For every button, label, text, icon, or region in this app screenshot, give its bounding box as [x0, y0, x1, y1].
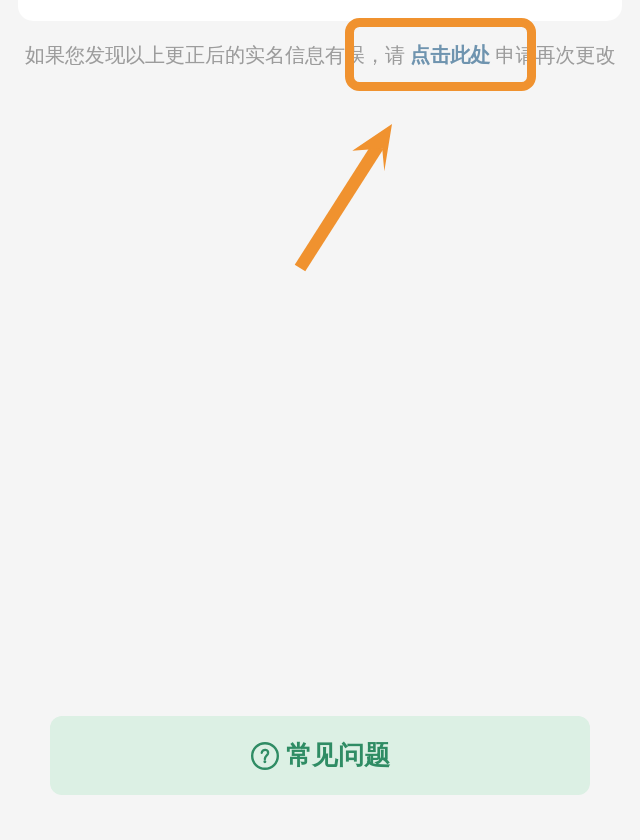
- staticText: 常见问题: [286, 739, 390, 772]
- staticText: 如果您发现以上更正后的实名信息有误，请 点击此处 申请再次更改: [25, 41, 616, 68]
- button[interactable]: 如果您发现以上更正后的实名信息有误，请 点击此处 申请再次更改: [25, 41, 616, 68]
- other: Highlighted area: [345, 18, 536, 91]
- button[interactable]: 常见问题: [50, 716, 590, 795]
- other: Pointer arrow: [282, 112, 410, 284]
